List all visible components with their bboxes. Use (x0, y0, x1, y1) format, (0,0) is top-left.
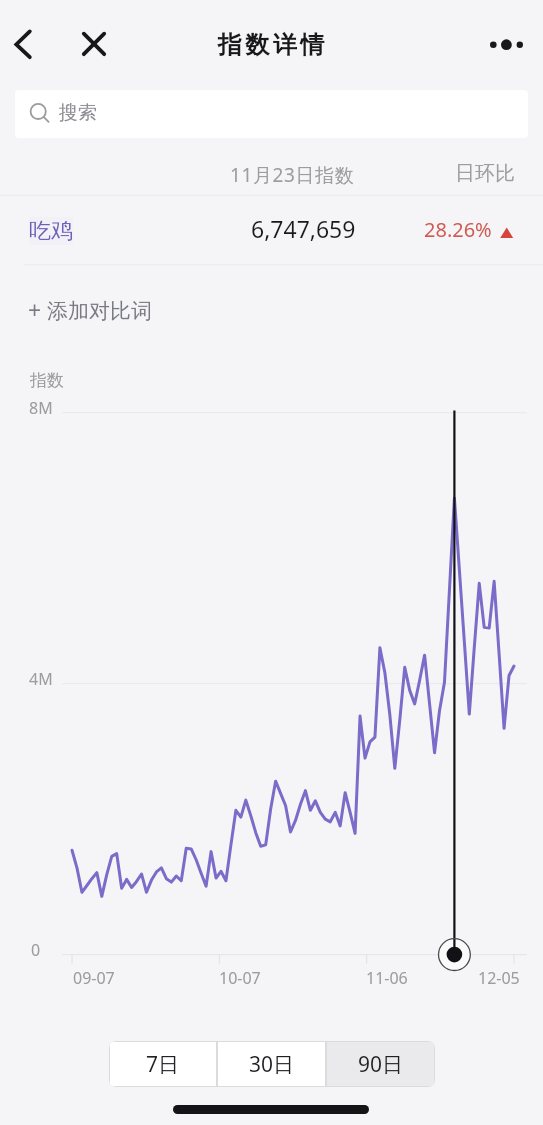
staticText: 8M (29, 397, 53, 419)
staticText: 10-07 (219, 967, 261, 989)
staticText: + (28, 294, 42, 325)
button[interactable]: 30日 (218, 1042, 325, 1086)
staticText: 指数详情 (216, 30, 326, 60)
staticText: 12-05 (478, 967, 520, 989)
staticText: 搜索 (59, 101, 97, 125)
staticText: 指数 (30, 370, 64, 391)
button[interactable]: + (0, 266, 543, 348)
staticText: 日环比 (455, 161, 515, 186)
button[interactable]: 吃鸡 (0, 196, 543, 264)
staticText: 4M (29, 668, 53, 690)
staticText: 09-07 (73, 967, 115, 989)
button[interactable]: More options (484, 22, 529, 67)
staticText: 0 (31, 939, 41, 961)
button[interactable]: 90日 (327, 1042, 434, 1086)
staticText: 28.26% (424, 216, 492, 243)
staticText: 30日 (249, 1050, 295, 1079)
staticText: 11月23日指数 (230, 162, 355, 188)
staticText: 7日 (146, 1050, 180, 1079)
button[interactable]: Close (72, 22, 116, 66)
button[interactable]: 搜索 (15, 90, 528, 138)
button[interactable]: Back (1, 22, 45, 66)
staticText: 添加对比词 (47, 298, 152, 324)
staticText: 6,747,659 (251, 213, 356, 244)
button[interactable]: 7日 (110, 1042, 216, 1086)
staticText: 90日 (358, 1050, 404, 1079)
staticText: 吃鸡 (29, 217, 73, 245)
staticText: 11-06 (366, 967, 408, 989)
